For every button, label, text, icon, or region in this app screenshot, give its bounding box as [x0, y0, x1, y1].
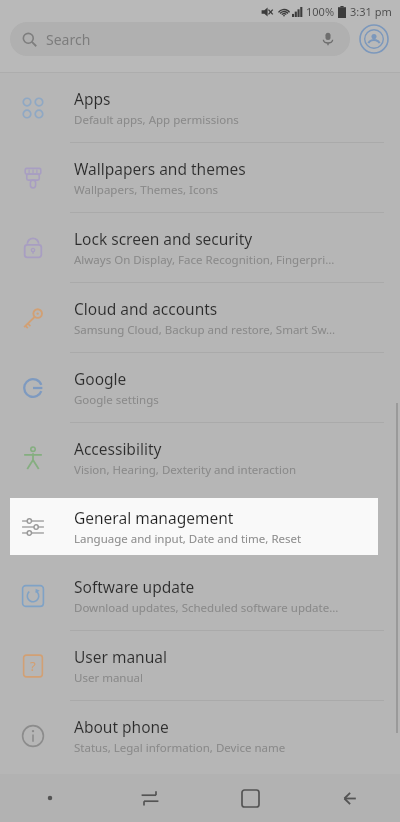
staticText: Apps — [74, 88, 111, 109]
staticText: Lock screen and security — [74, 228, 253, 249]
button[interactable]: Back — [300, 774, 400, 822]
button[interactable]: Hide navigation bar — [0, 774, 100, 822]
button[interactable]: Lock screen and security — [0, 213, 400, 282]
staticText: Status, Legal information, Device name — [74, 740, 286, 756]
staticText: 100% — [306, 4, 335, 19]
staticText: General management — [74, 507, 234, 528]
staticText: Language and input, Date and time, Reset — [74, 531, 302, 547]
button[interactable]: Search — [10, 22, 350, 56]
staticText: Always On Display, Face Recognition, Fin… — [74, 252, 335, 268]
staticText: Accessibility — [74, 438, 162, 459]
staticText: Google settings — [74, 392, 159, 408]
staticText: ? — [30, 657, 36, 675]
button[interactable]: Account — [358, 23, 390, 55]
staticText: Download updates, Scheduled software upd… — [74, 600, 339, 616]
button[interactable]: Software update — [0, 561, 400, 630]
staticText: Cloud and accounts — [74, 298, 218, 319]
staticText: About phone — [74, 716, 169, 737]
staticText: Wallpapers, Themes, Icons — [74, 182, 219, 198]
button[interactable]: About phone — [0, 701, 400, 770]
staticText: Google — [74, 368, 127, 389]
staticText: Wallpapers and themes — [74, 158, 246, 179]
button[interactable]: Cloud and accounts — [0, 283, 400, 352]
button[interactable]: Google — [0, 353, 400, 422]
button[interactable]: Home — [200, 774, 300, 822]
button[interactable]: Recent apps — [100, 774, 200, 822]
staticText: User manual — [74, 670, 143, 686]
staticText: Vision, Hearing, Dexterity and interacti… — [74, 462, 297, 478]
button[interactable]: Wallpapers and themes — [0, 143, 400, 212]
staticText: Samsung Cloud, Backup and restore, Smart… — [74, 322, 336, 338]
button[interactable]: Accessibility — [0, 423, 400, 492]
button[interactable]: ? — [0, 631, 400, 700]
staticText: Search — [46, 30, 91, 49]
staticText: User manual — [74, 646, 167, 667]
staticText: 3:31 pm — [350, 4, 392, 19]
staticText: Software update — [74, 576, 195, 597]
button[interactable]: General management — [10, 498, 378, 555]
staticText: Default apps, App permissions — [74, 112, 239, 128]
button[interactable]: Apps — [0, 73, 400, 142]
button[interactable]: Voice search — [318, 29, 338, 49]
